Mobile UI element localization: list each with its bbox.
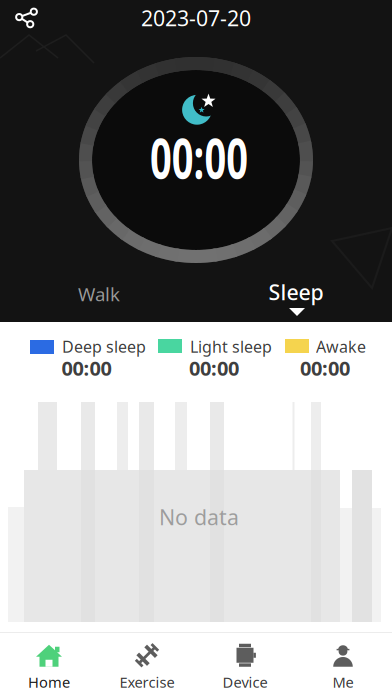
staticText: Light sleep xyxy=(190,336,272,357)
staticText: Home xyxy=(28,672,70,692)
staticText: 00:00 xyxy=(127,120,271,194)
staticText: 00:00 xyxy=(61,355,111,381)
button[interactable]: Exercise xyxy=(98,633,196,696)
staticText: Walk xyxy=(78,282,120,306)
staticText: Device xyxy=(222,672,267,692)
staticText: 00:00 xyxy=(189,355,239,381)
staticText: Me xyxy=(332,672,353,692)
staticText: 00:00 xyxy=(300,355,350,381)
staticText: Sleep xyxy=(268,278,323,306)
button[interactable]: Walk xyxy=(39,276,159,312)
staticText: No data xyxy=(159,503,239,531)
staticText: Exercise xyxy=(119,672,174,692)
button[interactable]: Device xyxy=(196,633,294,696)
button[interactable]: Home xyxy=(0,633,98,696)
staticText: 2023-07-20 xyxy=(141,4,251,32)
button[interactable]: Share xyxy=(6,2,46,36)
button[interactable]: Sleep xyxy=(236,274,356,310)
staticText: Deep sleep xyxy=(62,336,146,357)
staticText: Awake xyxy=(316,336,366,357)
button[interactable]: Me xyxy=(294,633,392,696)
